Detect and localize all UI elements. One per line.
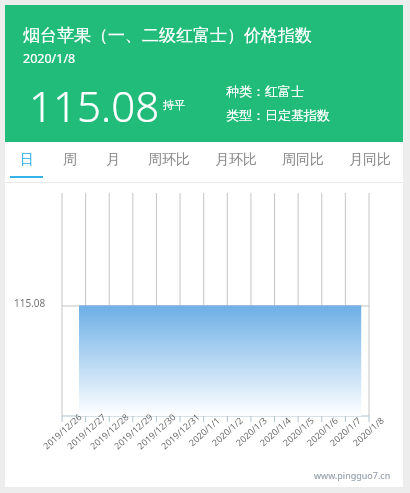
staticText: 周同比 (282, 151, 324, 169)
staticText: 月 (106, 151, 120, 169)
staticText: 2020/1/4 (257, 414, 293, 448)
staticText: 115.08 (29, 77, 160, 134)
staticText: 持平 (163, 98, 185, 112)
staticText: 周 (63, 151, 77, 169)
staticText: 月同比 (349, 151, 391, 169)
staticText: 月环比 (215, 151, 257, 169)
staticText: 2019/12/28 (87, 410, 131, 451)
staticText: 2020/1/6 (304, 414, 340, 448)
button[interactable]: 月环比 (202, 142, 269, 183)
staticText: www.pingguo7.cn (314, 469, 391, 481)
staticText: 烟台苹果（一、二级红富士）价格指数 (23, 25, 312, 46)
button[interactable]: 周环比 (135, 142, 202, 183)
button[interactable]: 月 (91, 142, 135, 183)
staticText: 2019/12/29 (111, 410, 155, 451)
staticText: 2020/1/3 (233, 414, 269, 448)
staticText: 115.08 (14, 296, 46, 310)
staticText: 2019/12/27 (64, 410, 108, 451)
staticText: 2020/1/7 (327, 414, 363, 448)
staticText: 2020/1/5 (280, 414, 316, 448)
staticText: 类型：日定基指数 (226, 107, 330, 123)
staticText: 2019/12/31 (158, 410, 202, 451)
button[interactable]: 日 (5, 142, 48, 183)
staticText: 2019/12/26 (40, 410, 84, 451)
staticText: 2020/1/8 (23, 50, 76, 67)
staticText: 2019/12/30 (134, 410, 178, 451)
staticText: 日 (20, 151, 34, 169)
staticText: 种类：红富士 (226, 83, 304, 99)
staticText: 2020/1/8 (350, 414, 386, 448)
staticText: 2020/1/2 (209, 414, 245, 448)
button[interactable]: 月同比 (336, 142, 403, 183)
button[interactable]: 周同比 (269, 142, 336, 183)
staticText: 2020/1/1 (186, 414, 222, 448)
button[interactable]: 周 (48, 142, 91, 183)
staticText: 周环比 (148, 151, 190, 169)
